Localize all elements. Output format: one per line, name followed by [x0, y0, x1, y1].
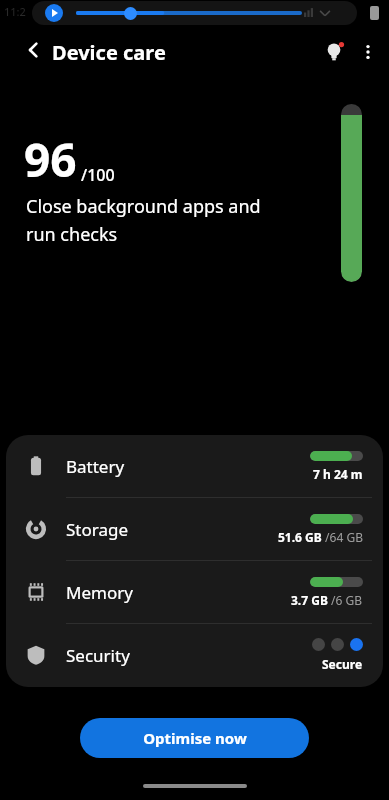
staticText: /64 GB — [322, 529, 363, 545]
staticText: /6 GB — [328, 592, 363, 608]
button[interactable]: Security — [6, 624, 383, 686]
button[interactable]: Storage — [6, 498, 383, 560]
staticText: 96 — [24, 128, 77, 191]
button[interactable]: Play — [45, 4, 63, 22]
staticText: Security — [66, 644, 130, 667]
staticText: Secure — [322, 656, 363, 672]
staticText: Close background apps and run checks — [26, 194, 261, 246]
staticText: Device care — [52, 39, 166, 66]
button[interactable]: More options — [348, 32, 388, 72]
staticText: Optimise now — [143, 728, 247, 748]
staticText: 7 h 24 m — [313, 466, 363, 482]
button[interactable]: Tips — [310, 28, 358, 76]
staticText: Storage — [66, 518, 129, 541]
staticText: Memory — [66, 581, 133, 604]
button[interactable]: Optimise now — [80, 718, 309, 758]
staticText: 11:2 — [4, 4, 26, 19]
button[interactable]: Back — [10, 26, 58, 74]
staticText: /100 — [81, 164, 115, 186]
staticText: 51.6 GB — [278, 529, 322, 545]
staticText: Battery — [66, 455, 125, 478]
staticText: 3.7 GB — [291, 592, 328, 608]
button[interactable]: Memory — [6, 561, 383, 623]
button[interactable]: Battery — [6, 435, 383, 497]
